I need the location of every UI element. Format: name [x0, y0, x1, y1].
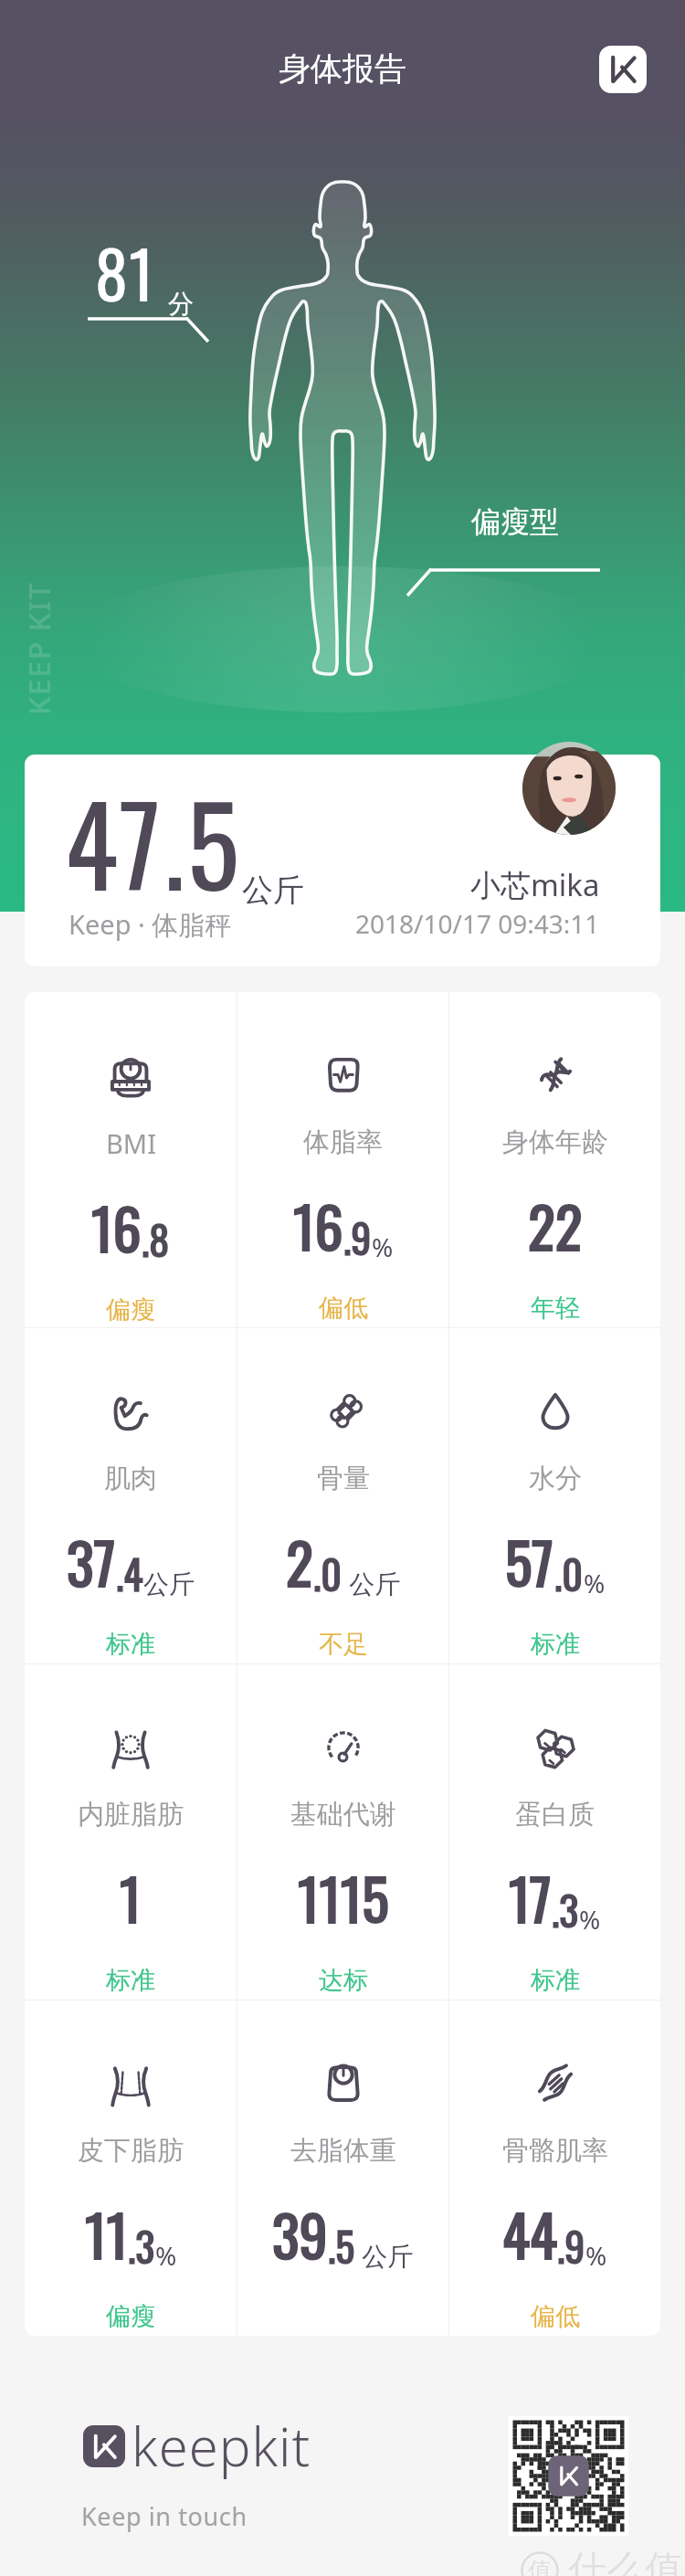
button[interactable]: 皮下脂肪	[25, 2001, 237, 2336]
staticText: 37	[67, 1519, 116, 1603]
staticText: 2	[286, 1519, 313, 1603]
staticText: 值	[528, 2556, 552, 2576]
button[interactable]: 身体年龄	[449, 992, 660, 1327]
button[interactable]: 内脏脂肪	[25, 1664, 237, 2000]
staticText: 17	[509, 1855, 552, 1939]
staticText: 1	[120, 1855, 142, 1939]
staticText: 11	[85, 2191, 128, 2275]
staticText: 1115	[298, 1855, 389, 1939]
staticText: 偏瘦	[106, 1294, 155, 1325]
staticText: 公斤	[242, 871, 304, 910]
staticText: 内脏脂肪	[78, 1798, 184, 1832]
staticText: 什么值得买	[568, 2546, 685, 2576]
staticText: 2018/10/17 09:43:11	[355, 906, 600, 941]
staticText: %	[585, 2238, 607, 2273]
staticText: 16	[293, 1183, 343, 1267]
staticText: 标准	[106, 1965, 155, 1996]
staticText: 公斤	[355, 2238, 414, 2273]
staticText: %	[372, 1230, 394, 1264]
staticText: %	[584, 1566, 606, 1600]
staticText: keepkit	[132, 2410, 311, 2482]
staticText: 基础代谢	[290, 1798, 396, 1832]
button[interactable]: 骨量	[237, 1328, 448, 1663]
staticText: .3	[128, 2216, 155, 2275]
staticText: 标准	[531, 1965, 580, 1996]
staticText: 81	[95, 223, 155, 321]
staticText: 去脂体重	[290, 2134, 396, 2168]
staticText: .3	[552, 1880, 579, 1939]
staticText: %	[579, 1902, 601, 1937]
staticText: BMI	[106, 1125, 156, 1161]
staticText: %	[155, 2238, 177, 2273]
staticText: 水分	[529, 1462, 582, 1495]
staticText: Keep in touch	[81, 2499, 248, 2533]
button[interactable]: 体脂率	[237, 992, 448, 1327]
staticText: 偏低	[319, 1293, 368, 1324]
button[interactable]: 蛋白质	[449, 1664, 660, 2000]
button[interactable]: Keep	[599, 46, 647, 93]
staticText: 分	[168, 288, 194, 320]
staticText: .0	[313, 1544, 342, 1603]
button[interactable]: BMI	[25, 992, 237, 1327]
staticText: 偏瘦	[106, 2301, 155, 2332]
staticText: 年轻	[531, 1293, 580, 1324]
staticText: .9	[343, 1208, 372, 1267]
staticText: 体脂率	[303, 1125, 383, 1159]
staticText: 小芯mika	[470, 864, 600, 905]
staticText: 标准	[531, 1629, 580, 1660]
staticText: 偏瘦型	[471, 503, 559, 540]
staticText: 公斤	[342, 1566, 401, 1600]
button[interactable]: 水分	[449, 1328, 660, 1663]
staticText: 皮下脂肪	[78, 2134, 184, 2168]
button[interactable]: 肌肉	[25, 1328, 237, 1663]
button[interactable]: 基础代谢	[237, 1664, 448, 2000]
staticText: 57	[505, 1519, 554, 1603]
staticText: 16	[91, 1185, 142, 1269]
staticText: 44	[502, 2191, 557, 2275]
staticText: 47.5	[65, 760, 242, 923]
staticText: 骨量	[317, 1462, 370, 1495]
staticText: 标准	[106, 1629, 155, 1660]
staticText: .0	[554, 1544, 584, 1603]
staticText: 身体年龄	[502, 1125, 608, 1159]
staticText: .4	[116, 1544, 143, 1603]
button[interactable]: 骨骼肌率	[449, 2001, 660, 2336]
staticText: 39	[272, 2191, 328, 2275]
staticText: .5	[328, 2216, 355, 2275]
staticText: Keep · 体脂秤	[68, 906, 232, 943]
staticText: 肌肉	[104, 1462, 157, 1495]
staticText: .9	[557, 2216, 585, 2275]
staticText: 达标	[319, 1965, 368, 1996]
staticText: 身体报告	[279, 48, 406, 89]
staticText: 不足	[319, 1629, 368, 1660]
staticText: 公斤	[143, 1568, 195, 1600]
staticText: 22	[528, 1183, 583, 1267]
staticText: KEEP KIT	[19, 581, 59, 715]
button[interactable]: 去脂体重	[237, 2001, 448, 2336]
staticText: 骨骼肌率	[502, 2134, 608, 2168]
staticText: 偏低	[531, 2301, 580, 2332]
staticText: 蛋白质	[515, 1798, 595, 1832]
staticText: .8	[142, 1209, 170, 1269]
